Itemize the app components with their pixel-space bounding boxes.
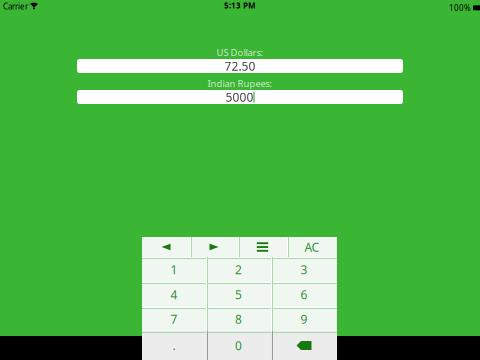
button[interactable]: Delete xyxy=(271,331,337,360)
staticText: 5000 xyxy=(225,89,253,105)
button[interactable]: AC xyxy=(287,237,337,257)
button[interactable]: . xyxy=(142,331,206,360)
button[interactable]: 3 xyxy=(271,257,337,282)
button[interactable]: 9 xyxy=(271,307,337,331)
staticText: 1 xyxy=(170,261,177,277)
button[interactable]: 0 xyxy=(206,331,271,360)
button[interactable]: 5 xyxy=(206,282,271,307)
button[interactable]: 7 xyxy=(142,307,206,331)
staticText: Indian Rupees: xyxy=(207,77,272,90)
staticText: 72.50 xyxy=(224,58,255,74)
staticText: 6 xyxy=(300,286,307,302)
staticText: 5:13 PM xyxy=(224,0,256,11)
button[interactable]: 6 xyxy=(271,282,337,307)
staticText: 2 xyxy=(235,261,242,277)
button[interactable]: Keyboard options xyxy=(238,237,287,257)
button[interactable]: Next field xyxy=(190,237,238,257)
button[interactable]: 2 xyxy=(206,257,271,282)
staticText: . xyxy=(172,337,175,353)
staticText: 100% xyxy=(449,2,471,13)
staticText: Carrier xyxy=(3,1,28,12)
button[interactable]: Previous field xyxy=(142,237,190,257)
staticText: 7 xyxy=(170,311,177,327)
staticText: 4 xyxy=(170,286,177,302)
staticText: 3 xyxy=(300,261,307,277)
staticText: 0 xyxy=(235,337,242,353)
staticText: 9 xyxy=(300,311,307,327)
button[interactable]: 1 xyxy=(142,257,206,282)
button[interactable]: 4 xyxy=(142,282,206,307)
button[interactable]: 8 xyxy=(206,307,271,331)
staticText: US Dollars: xyxy=(216,46,263,59)
staticText: 8 xyxy=(235,311,242,327)
staticText: AC xyxy=(304,239,319,255)
staticText: 5 xyxy=(235,286,242,302)
